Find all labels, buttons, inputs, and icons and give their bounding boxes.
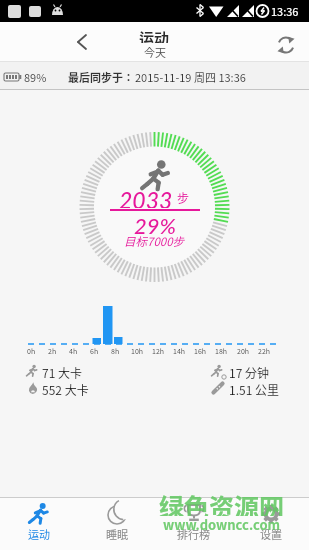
staticText: 2033	[119, 186, 173, 208]
staticText: 绿色资源网	[159, 488, 285, 516]
staticText: 29%	[134, 212, 176, 234]
staticText: 运动	[28, 526, 50, 542]
staticText: 89%	[24, 69, 47, 85]
button[interactable]	[270, 29, 302, 61]
staticText: 最后同步于：	[68, 69, 134, 85]
staticText: www.downcc.com	[163, 515, 281, 534]
staticText: 17 分钟	[229, 364, 270, 379]
staticText: 12h	[152, 346, 165, 356]
staticText: 71 大卡	[42, 364, 83, 379]
staticText: 6h	[90, 346, 99, 356]
staticText: 排行榜	[177, 526, 210, 542]
staticText: 20h	[237, 346, 250, 356]
staticText: 4h	[69, 346, 78, 356]
staticText: 1.51 公里	[229, 381, 280, 396]
staticText: 今天	[144, 44, 166, 58]
staticText: 18h	[215, 346, 228, 356]
staticText: 0h	[27, 346, 36, 356]
staticText: 2015-11-19 周四 13:36	[135, 69, 246, 85]
staticText: 目标7000步	[124, 233, 185, 247]
staticText: 2h	[48, 346, 57, 356]
button[interactable]: 排行榜	[155, 498, 232, 550]
staticText: 552 大卡	[42, 381, 89, 396]
staticText: 运动	[139, 27, 170, 43]
staticText: 10h	[131, 346, 144, 356]
staticText: 13:36	[271, 3, 299, 19]
staticText: 22h	[258, 346, 271, 356]
staticText: 步	[177, 189, 190, 206]
button[interactable]: 运动	[0, 498, 78, 550]
button[interactable]: 设置	[232, 498, 309, 550]
staticText: 14h	[173, 346, 186, 356]
staticText: 16h	[194, 346, 207, 356]
button[interactable]	[68, 28, 96, 56]
staticText: 8h	[111, 346, 120, 356]
button[interactable]: 睡眠	[78, 498, 155, 550]
staticText: 设置	[260, 526, 282, 542]
staticText: 睡眠	[106, 526, 128, 542]
